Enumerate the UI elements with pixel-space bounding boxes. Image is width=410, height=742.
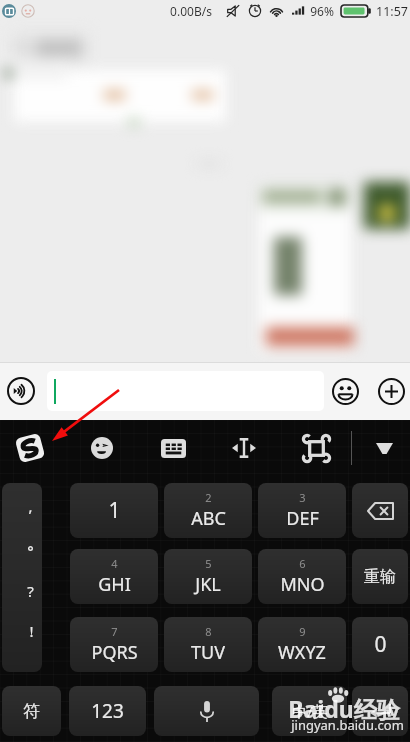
staticText: 中/英 (292, 701, 328, 721)
staticText: PQRS (91, 640, 138, 665)
button[interactable]: 8 (164, 617, 252, 672)
button[interactable]: 1 (70, 483, 158, 538)
staticText: ! (29, 621, 34, 641)
staticText: 7 (111, 624, 118, 639)
button[interactable] (352, 483, 408, 538)
button[interactable] (352, 686, 408, 736)
button[interactable] (47, 371, 324, 411)
button[interactable]: 123 (69, 686, 146, 736)
staticText: 重输 (364, 567, 396, 587)
button[interactable]: 6 (258, 549, 346, 604)
button[interactable]: 3 (258, 483, 346, 538)
staticText: MNO (280, 572, 325, 597)
staticText: GHI (98, 572, 131, 597)
staticText: , (28, 496, 33, 516)
button[interactable]: Keyboard layout (151, 420, 195, 476)
staticText: 11:57 (376, 3, 408, 20)
staticText: jingyan.baidu.com (291, 716, 404, 734)
staticText: 6 (299, 556, 306, 571)
button[interactable]: Emoji (328, 366, 362, 416)
staticText: TUV (191, 640, 225, 665)
staticText: 4 (111, 556, 118, 571)
staticText: 5 (205, 556, 212, 571)
staticText: 1 (108, 496, 121, 525)
staticText: 123 (91, 698, 124, 724)
staticText: 2 (205, 490, 212, 505)
button[interactable]: Sogou menu (6, 420, 54, 476)
button[interactable]: Voice message (2, 366, 39, 416)
staticText: JKL (195, 572, 221, 597)
staticText: Baidu经验 (288, 693, 400, 724)
staticText: ABC (191, 506, 226, 531)
staticText: 0.00B/s (170, 3, 212, 19)
staticText: 96% (310, 3, 334, 19)
button[interactable]: Move cursor (222, 420, 266, 476)
button[interactable]: 7 (70, 617, 158, 672)
staticText: 3 (299, 490, 306, 505)
button[interactable]: Settings (294, 420, 338, 476)
staticText: 符 (23, 701, 40, 722)
button[interactable]: 0 (352, 617, 408, 672)
button[interactable]: 5 (164, 549, 252, 604)
button[interactable]: More options (374, 366, 408, 416)
button[interactable]: 符 (2, 686, 61, 736)
staticText: 0 (374, 630, 387, 659)
staticText: DEF (286, 506, 319, 531)
button[interactable] (154, 686, 259, 736)
staticText: 9 (299, 624, 306, 639)
button[interactable]: 4 (70, 549, 158, 604)
button[interactable]: 2 (164, 483, 252, 538)
button[interactable]: 中/英 (272, 686, 347, 736)
button[interactable]: Emoji panel (80, 420, 124, 476)
button[interactable]: Hide keyboard (362, 420, 406, 476)
button[interactable]: 重输 (352, 549, 408, 604)
button[interactable]: , (2, 483, 42, 672)
staticText: WXYZ (278, 640, 326, 665)
staticText: 8 (205, 624, 212, 639)
staticText: ? (27, 581, 34, 601)
button[interactable]: 9 (258, 617, 346, 672)
